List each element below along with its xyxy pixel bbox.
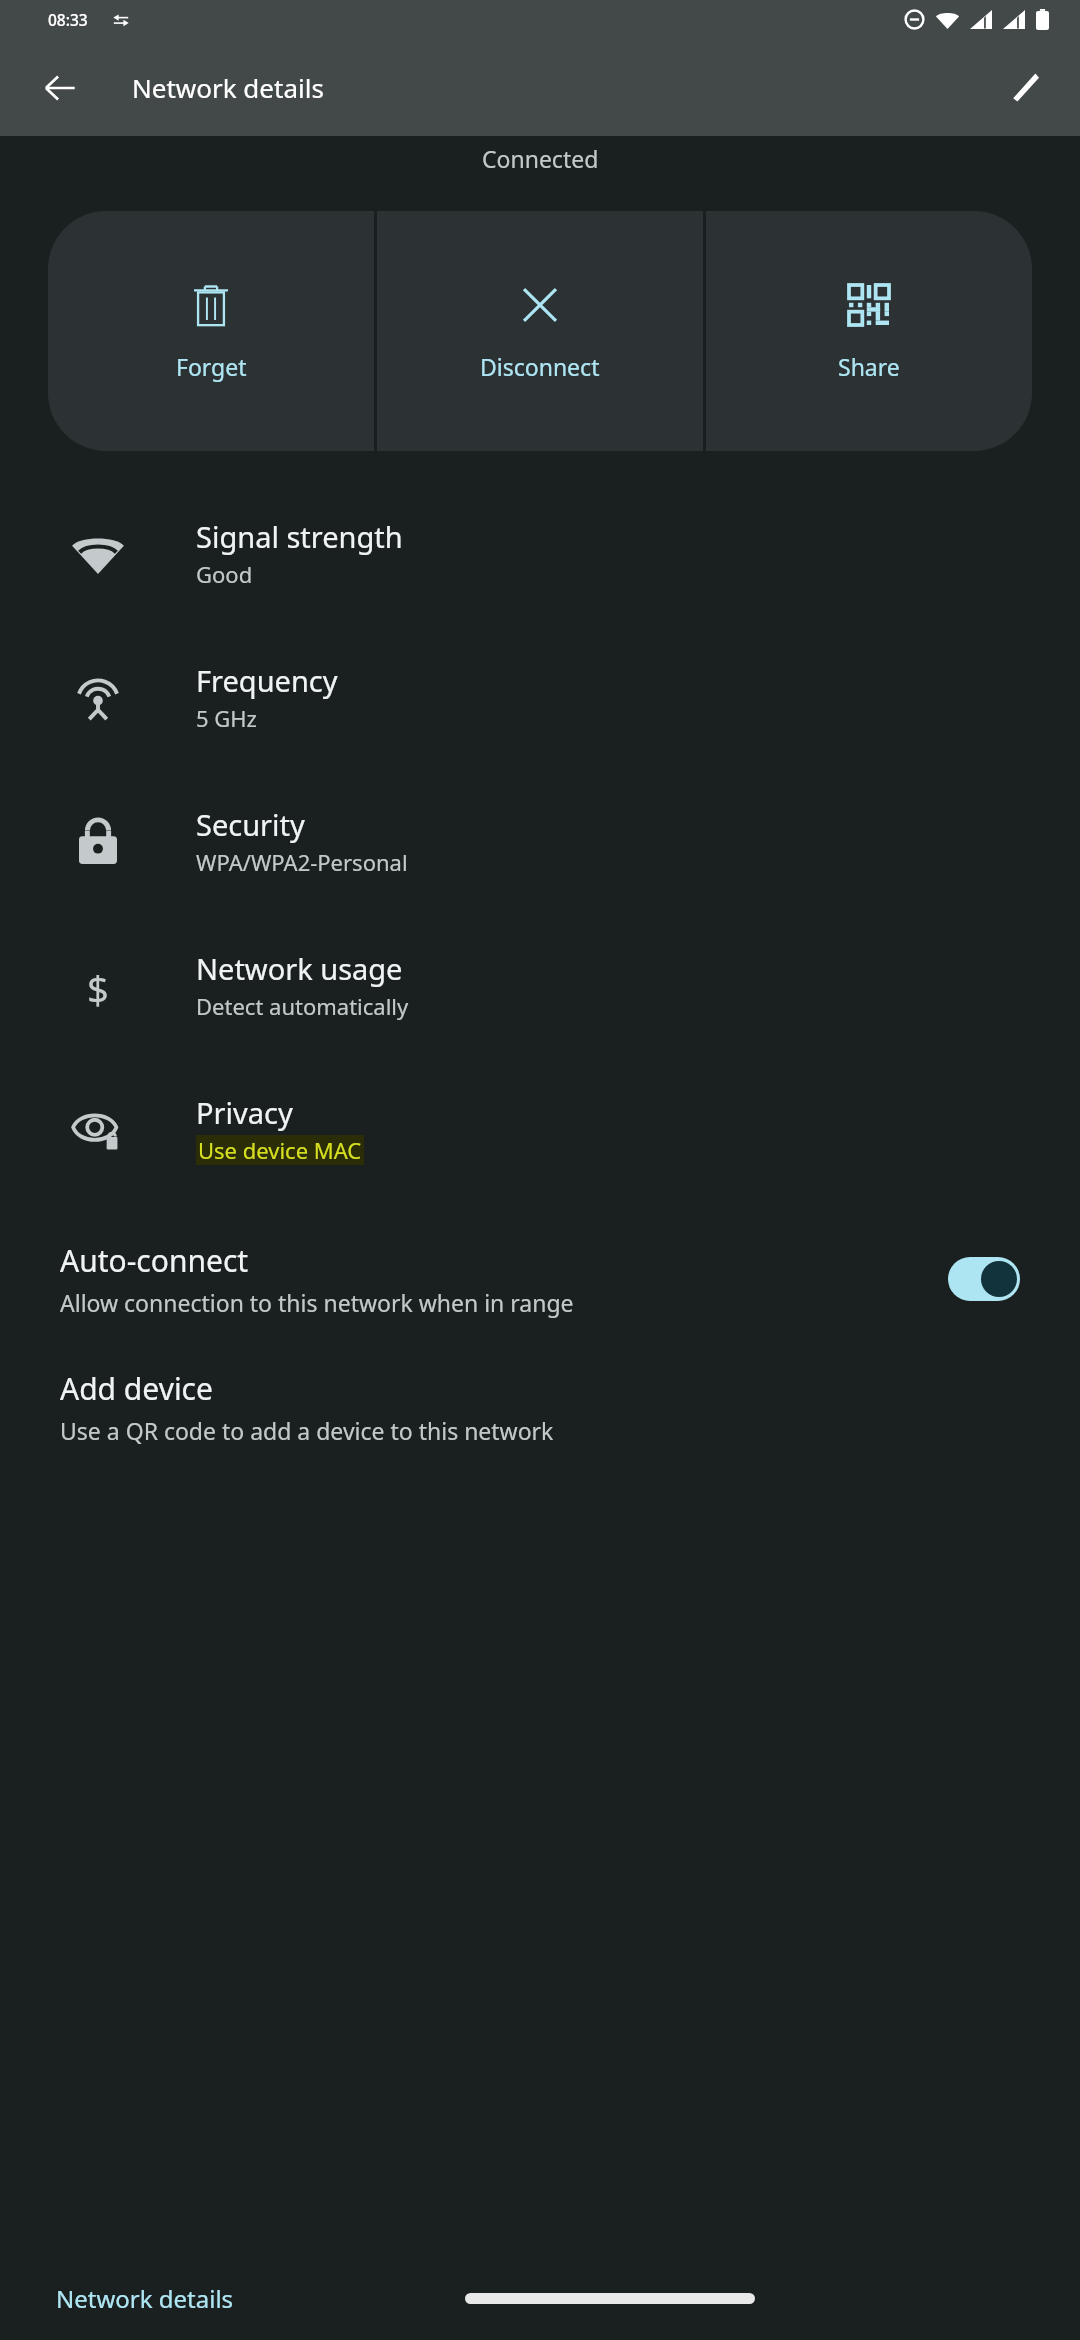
button[interactable]: Forget [48, 211, 374, 451]
button[interactable]: Frequency [0, 625, 1080, 769]
staticText: Good [196, 559, 253, 589]
staticText: 08:33 [48, 9, 88, 30]
staticText: Use a QR code to add a device to this ne… [60, 1415, 554, 1446]
staticText: Security [196, 805, 305, 844]
staticText: Network details [132, 70, 324, 105]
staticText: Network details [56, 2282, 234, 2315]
button[interactable]: Signal strength [0, 481, 1080, 625]
staticText: Forget [176, 351, 247, 382]
button[interactable]: Add device [0, 1354, 1080, 1460]
button[interactable]: Privacy [0, 1057, 1080, 1201]
staticText: Signal strength [196, 517, 403, 556]
button[interactable]: $ [0, 913, 1080, 1057]
staticText: Use device MAC [198, 1135, 362, 1165]
button[interactable]: Auto-connect toggle [948, 1257, 1020, 1301]
button[interactable]: Security [0, 769, 1080, 913]
button[interactable]: Edit [988, 52, 1060, 124]
staticText: Privacy [196, 1093, 293, 1132]
staticText: Share [838, 351, 900, 382]
staticText: Detect automatically [196, 991, 409, 1021]
staticText: Network usage [196, 949, 403, 988]
staticText: WPA/WPA2-Personal [196, 847, 408, 877]
button[interactable]: Disconnect [377, 211, 703, 451]
staticText: Auto-connect [60, 1240, 249, 1281]
staticText: Add device [60, 1368, 213, 1409]
staticText: 5 GHz [196, 703, 257, 733]
staticText: Allow connection to this network when in… [60, 1287, 773, 1318]
staticText: Disconnect [480, 351, 600, 382]
button[interactable]: Back [24, 52, 96, 124]
staticText: Frequency [196, 661, 338, 700]
button[interactable]: Share [706, 211, 1032, 451]
staticText: $ [87, 963, 109, 1007]
staticText: Connected [482, 143, 599, 174]
button[interactable]: Auto-connect [0, 1226, 1080, 1332]
